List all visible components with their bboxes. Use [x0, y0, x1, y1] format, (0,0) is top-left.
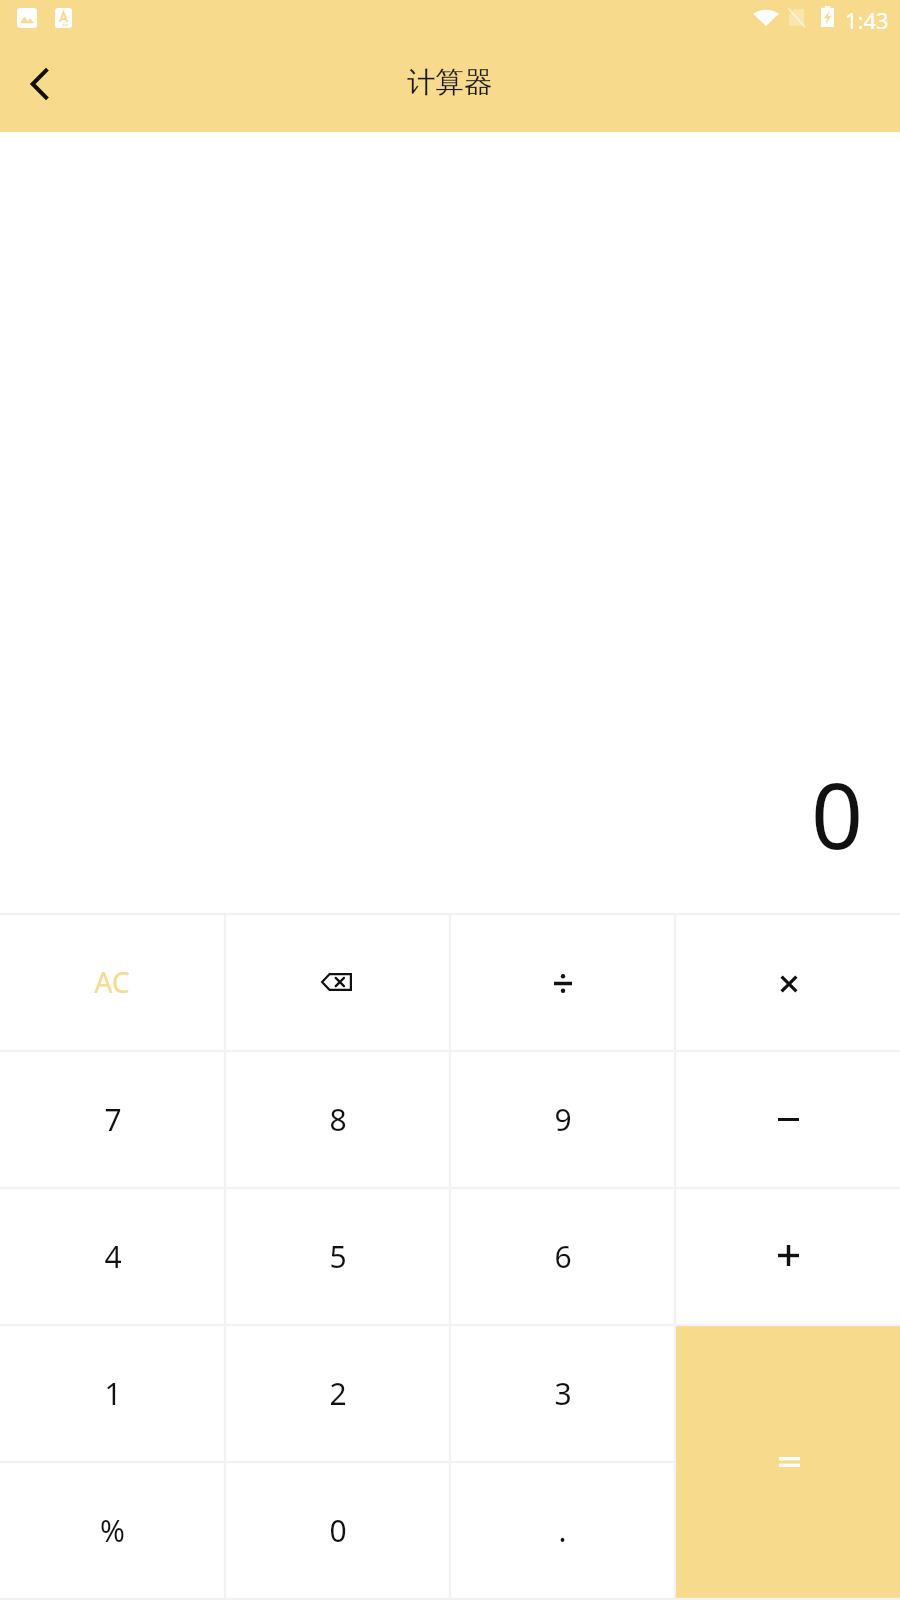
button[interactable]: 1 [0, 1325, 225, 1462]
button[interactable]: 0 [225, 1462, 450, 1599]
staticText: 3 [554, 1373, 572, 1414]
staticText: 计算器 [407, 65, 493, 101]
button[interactable]: 9 [450, 1051, 675, 1188]
button[interactable]: 5 [225, 1188, 450, 1325]
staticText: 0 [329, 1510, 347, 1551]
staticText: 4 [104, 1236, 122, 1277]
button[interactable]: % [0, 1462, 225, 1599]
button[interactable]: Plus [675, 1188, 900, 1325]
staticText: 0 [811, 752, 864, 876]
staticText: 7 [104, 1099, 122, 1140]
staticText: 1:43 [845, 5, 889, 35]
button[interactable]: 2 [225, 1325, 450, 1462]
button[interactable]: Multiply [675, 914, 900, 1051]
button[interactable]: 7 [0, 1051, 225, 1188]
staticText: 1 [104, 1373, 122, 1414]
button[interactable]: Minus [675, 1051, 900, 1188]
button[interactable]: 3 [450, 1325, 675, 1462]
button[interactable]: 6 [450, 1188, 675, 1325]
button[interactable]: Backspace [225, 914, 450, 1051]
button[interactable]: 4 [0, 1188, 225, 1325]
button[interactable]: Equals [676, 1326, 900, 1598]
staticText: . [558, 1510, 567, 1551]
staticText: % [100, 1510, 125, 1551]
staticText: 8 [329, 1099, 347, 1140]
button[interactable]: . [450, 1462, 675, 1599]
button[interactable]: Back [1, 46, 77, 122]
button[interactable]: Divide [450, 914, 675, 1051]
button[interactable]: 8 [225, 1051, 450, 1188]
staticText: 6 [554, 1236, 572, 1277]
staticText: 5 [329, 1236, 347, 1277]
button[interactable]: AC [0, 914, 225, 1051]
staticText: 2 [329, 1373, 347, 1414]
staticText: AC [94, 963, 130, 1002]
staticText: 9 [554, 1099, 572, 1140]
